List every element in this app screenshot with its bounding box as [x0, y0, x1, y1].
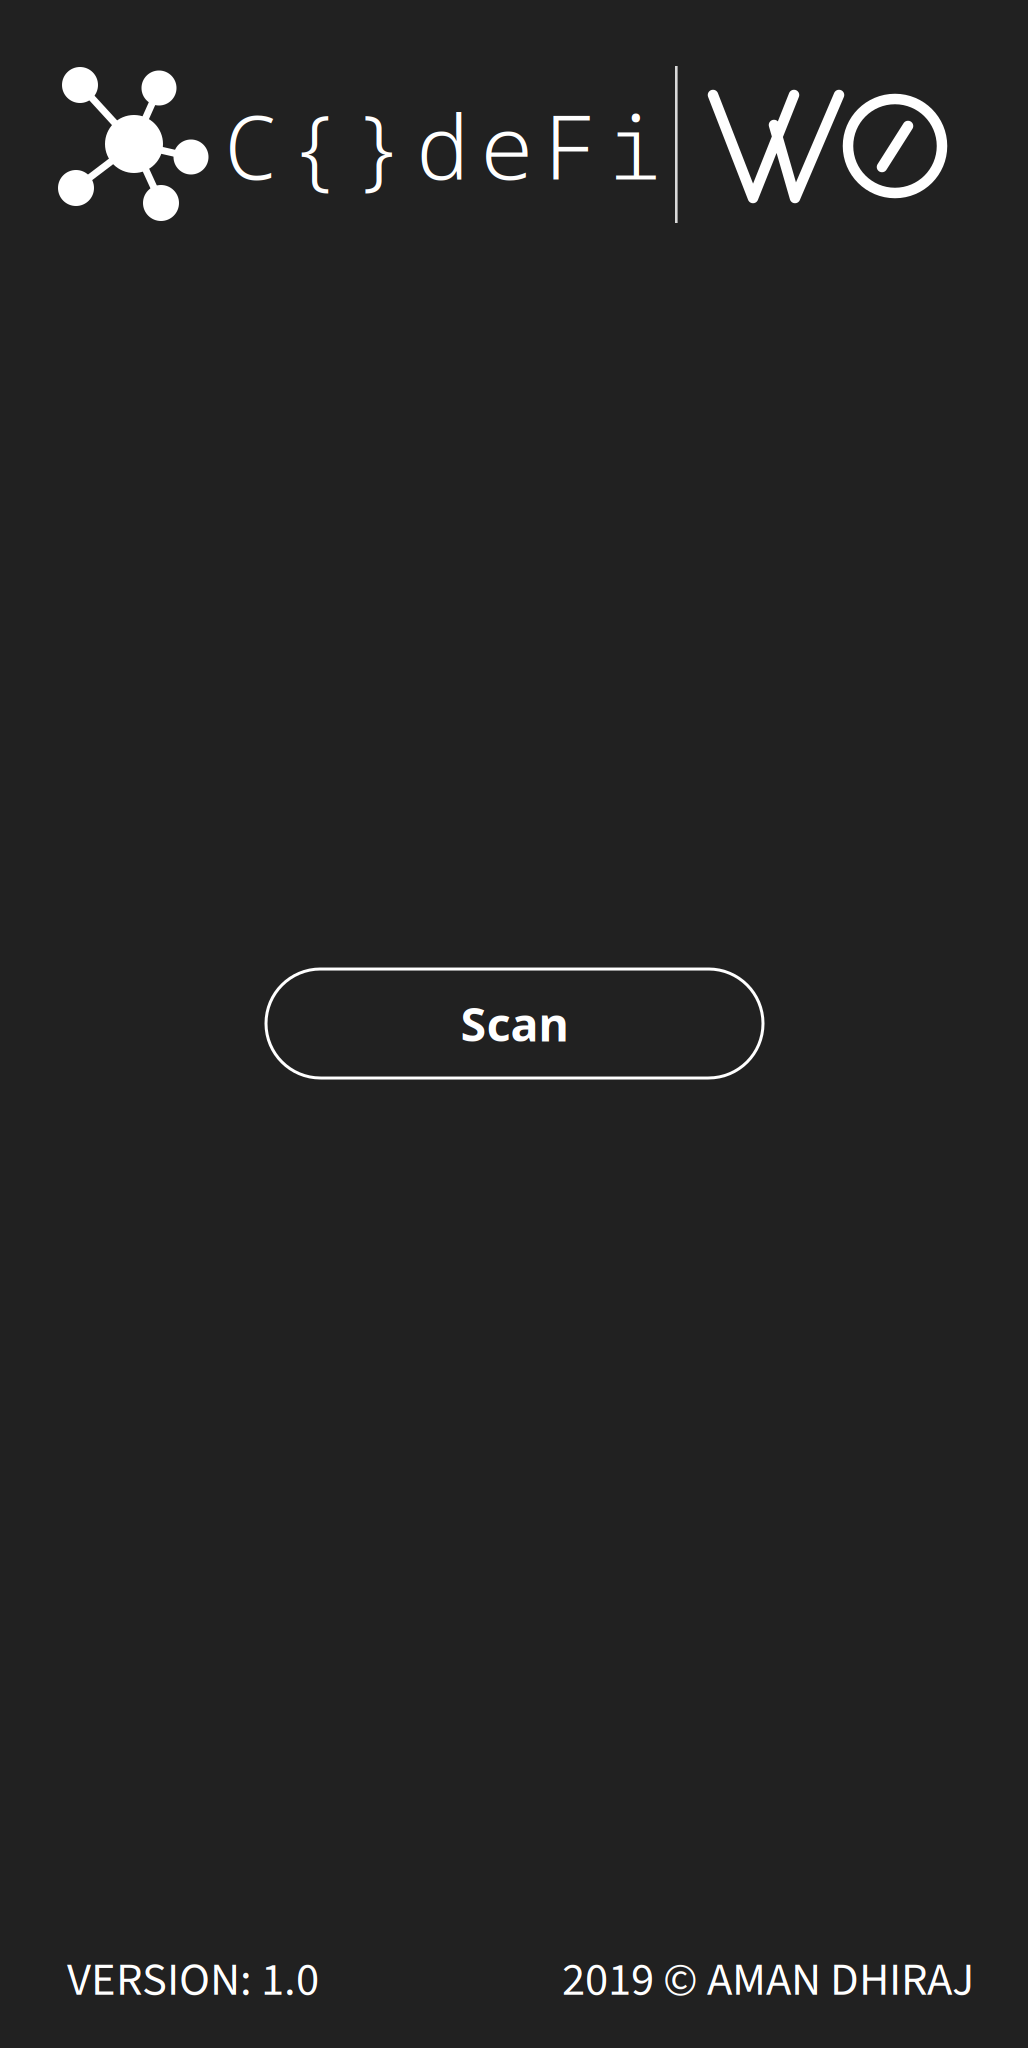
staticText: Scan — [460, 992, 568, 1054]
staticText: 2019 © AMAN DHIRAJ — [562, 1947, 974, 2013]
button[interactable]: Scan — [266, 969, 763, 1078]
staticText: VERSION: 1.0 — [67, 1947, 319, 2013]
staticText: C{}deFi — [224, 84, 662, 206]
